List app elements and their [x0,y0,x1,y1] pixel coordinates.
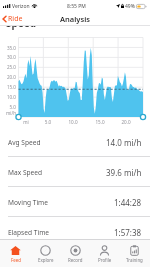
staticText: Verizon [12,3,30,10]
staticText: Ride [8,14,23,24]
staticText: 20.0 [0,74,16,80]
staticText: 20.0 [119,119,133,125]
button[interactable]: Explore [31,243,60,265]
staticText: 30.0 [0,54,16,60]
staticText: Record [68,257,83,263]
button[interactable]: Elapsed Time [0,217,150,247]
button[interactable]: Training [120,243,149,265]
staticText: Training [126,257,143,263]
button[interactable]: Avg Speed [0,127,150,157]
staticText: Feed [11,257,21,263]
staticText: Avg Speed [8,138,41,147]
button[interactable]: Moving Time [0,187,150,217]
staticText: mi [19,119,33,125]
staticText: Analysis [60,14,90,24]
button[interactable]: Profile [90,243,119,265]
staticText: Explore [38,257,54,263]
button[interactable]: Ride [0,12,27,26]
staticText: 39.6 mi/h [106,167,142,178]
staticText: 35.0 [0,45,16,51]
staticText: Profile [98,257,112,263]
staticText: 10.0 [0,94,16,100]
staticText: 15.0 [0,84,16,90]
staticText: 49% [125,3,135,10]
staticText: Elapsed Time [8,228,50,237]
staticText: 5.0 [41,119,55,125]
staticText: 8:55 PM [67,3,86,10]
staticText: 25.0 [0,64,16,70]
staticText: 5.0 [0,104,16,110]
staticText: Max Speed [8,168,43,177]
staticText: 14.0 mi/h [106,137,142,148]
staticText: 10.0 [66,119,80,125]
staticText: 1:57:38 [114,227,142,238]
button[interactable]: Max Speed [0,157,150,187]
staticText: 15.0 [93,119,107,125]
staticText: Speed [6,16,37,30]
button[interactable]: Record [61,243,90,265]
staticText: mi/h [0,110,16,116]
button[interactable]: Feed [1,243,30,265]
staticText: Moving Time [8,198,48,207]
staticText: 1:44:28 [114,197,142,208]
